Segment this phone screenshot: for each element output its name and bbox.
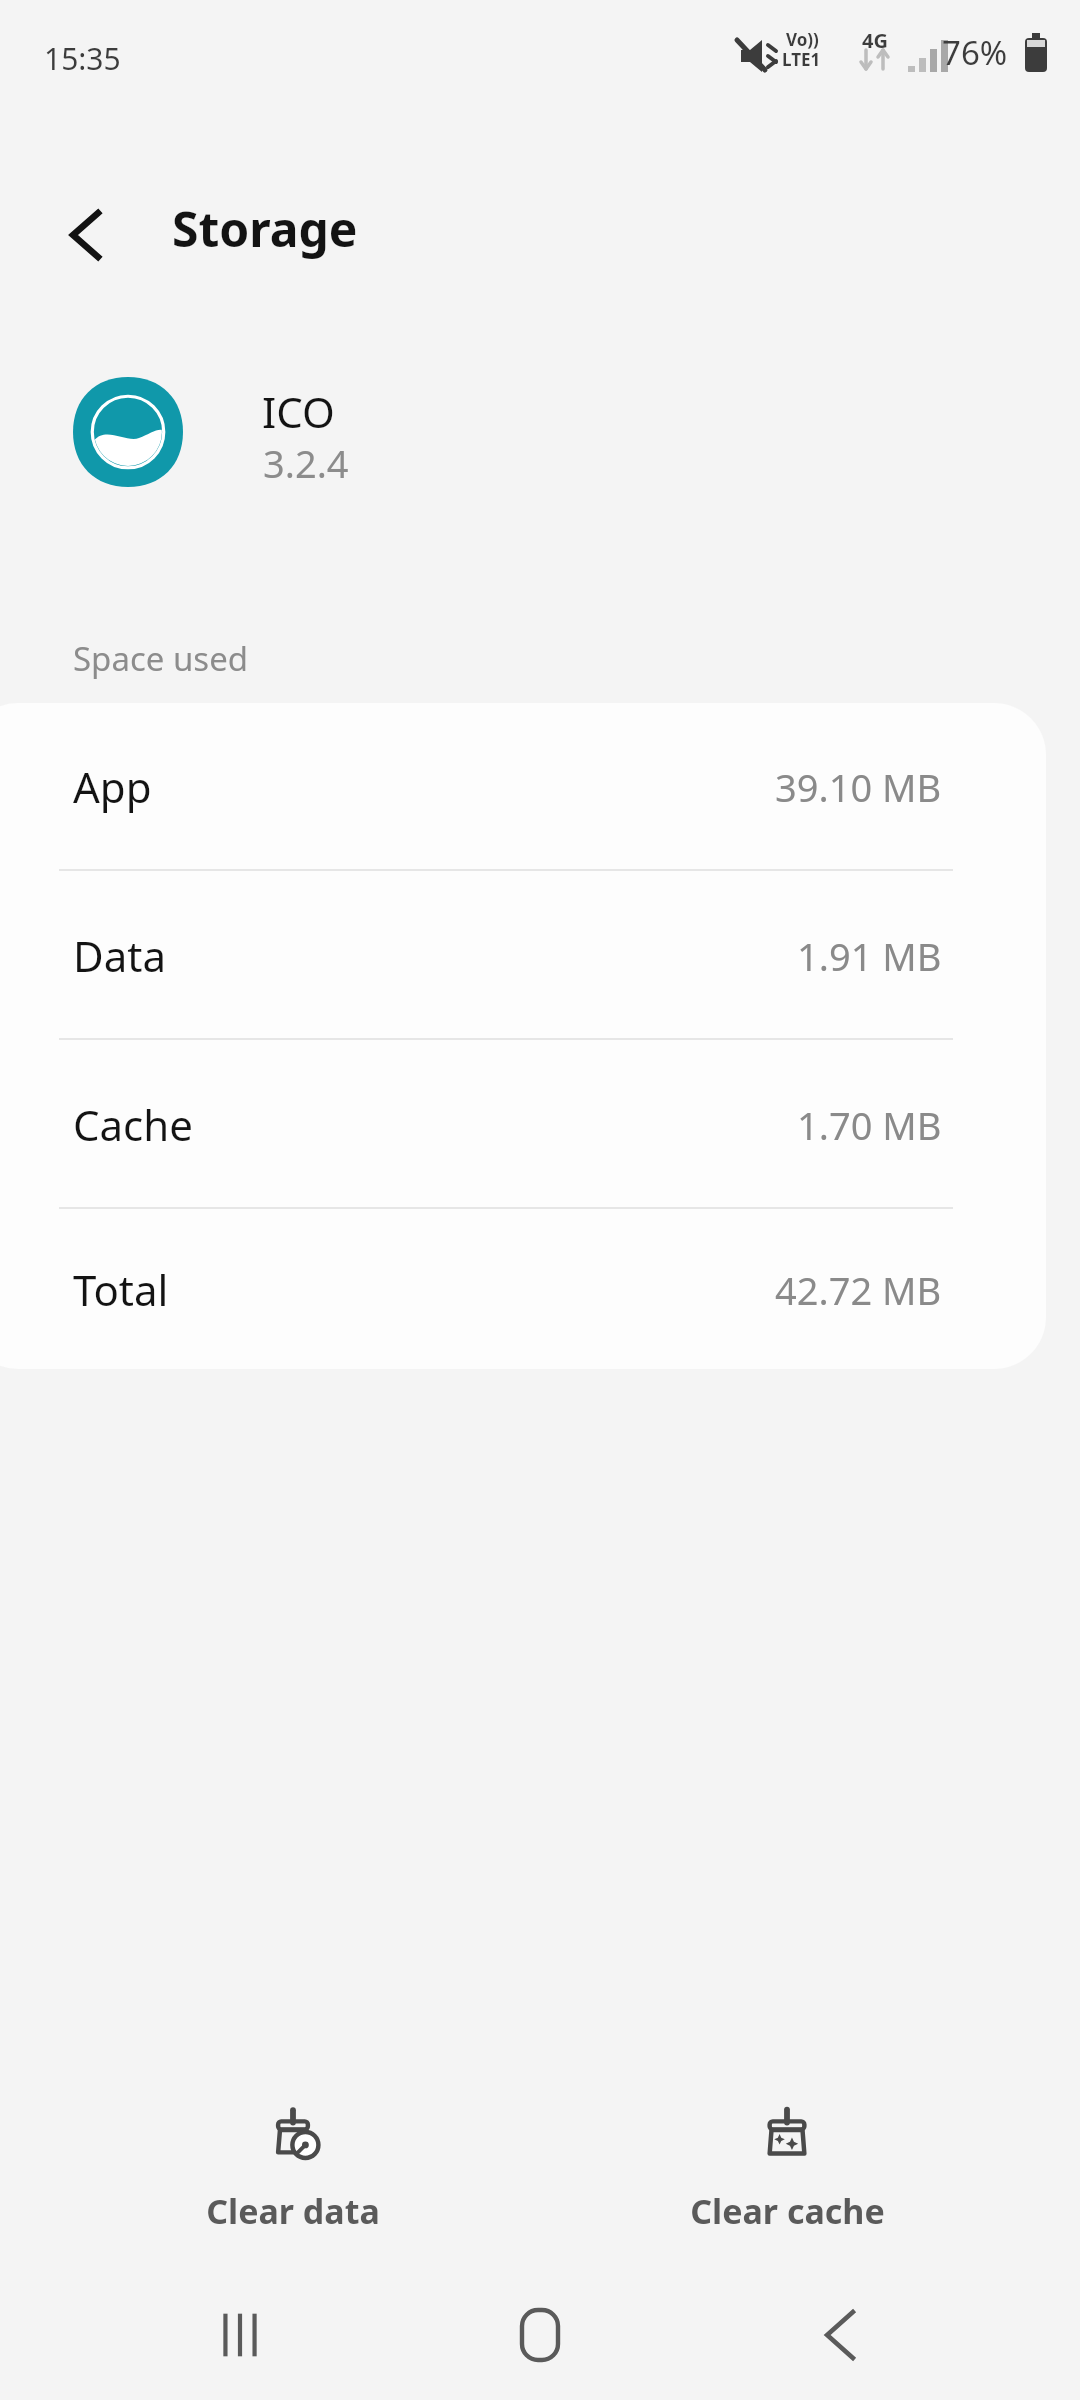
button[interactable]: Recents xyxy=(180,2290,300,2380)
button[interactable]: Clear cache xyxy=(587,2090,987,2270)
staticText: 76% xyxy=(942,30,1008,75)
staticText: Clear data xyxy=(206,2188,380,2234)
staticText: App xyxy=(73,758,152,815)
staticText: 3.2.4 xyxy=(263,437,349,489)
staticText: Storage xyxy=(172,196,358,261)
staticText: Clear cache xyxy=(690,2188,885,2234)
staticText: Cache xyxy=(73,1096,193,1153)
staticText: Data xyxy=(73,927,166,984)
staticText: LTE1 xyxy=(782,48,821,71)
staticText: ICO xyxy=(262,383,335,440)
button[interactable]: Home xyxy=(480,2290,600,2380)
button[interactable]: Cache xyxy=(0,1041,1046,1208)
staticText: 39.10 MB xyxy=(775,761,942,813)
staticText: 42.72 MB xyxy=(775,1264,942,1316)
button[interactable]: Data xyxy=(0,872,1046,1039)
staticText: 1.70 MB xyxy=(797,1099,942,1151)
staticText: 1.91 MB xyxy=(797,930,942,982)
staticText: Space used xyxy=(73,636,249,681)
staticText: 4G xyxy=(862,27,888,54)
button[interactable]: Back xyxy=(40,190,130,280)
button[interactable]: App xyxy=(0,703,1046,870)
staticText: Vo)) xyxy=(786,28,819,51)
staticText: Total xyxy=(73,1261,169,1318)
button[interactable]: Total xyxy=(0,1210,1046,1369)
button[interactable]: Back xyxy=(780,2290,900,2380)
staticText: 15:35 xyxy=(44,38,121,79)
button[interactable]: Clear data xyxy=(93,2090,493,2270)
